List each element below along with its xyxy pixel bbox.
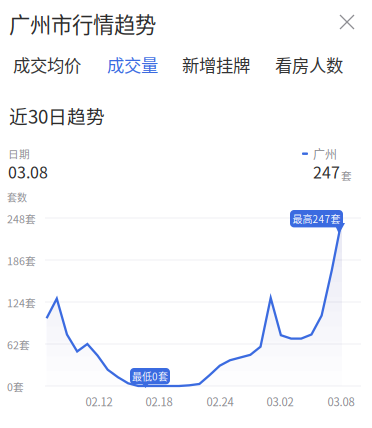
staticText: 广州 — [313, 145, 337, 162]
staticText: 新增挂牌 — [182, 52, 250, 77]
button[interactable]: 成交量 — [100, 46, 165, 83]
staticText: 最高247套 — [292, 211, 340, 226]
staticText: 套数 — [7, 190, 27, 204]
staticText: 成交均价 — [13, 52, 81, 77]
staticText: 03.08 — [327, 393, 354, 409]
button[interactable]: 关闭 — [330, 5, 364, 39]
staticText: 最低0套 — [132, 369, 168, 383]
staticText: 03.08 — [8, 160, 48, 183]
staticText: 248套 — [7, 211, 36, 226]
staticText: 日期 — [8, 146, 30, 161]
staticText: 02.18 — [145, 393, 172, 409]
staticText: 成交量 — [107, 52, 158, 77]
staticText: 看房人数 — [275, 52, 343, 77]
staticText: 124套 — [7, 295, 36, 310]
staticText: 02.24 — [206, 393, 233, 409]
staticText: 套 — [341, 168, 352, 183]
staticText: 广州市行情趋势 — [9, 8, 156, 39]
button[interactable]: 成交均价 — [6, 46, 88, 83]
staticText: 02.12 — [85, 393, 112, 409]
button[interactable]: 看房人数 — [268, 46, 350, 83]
staticText: 0套 — [7, 379, 24, 394]
staticText: 247 — [313, 160, 340, 183]
staticText: 03.02 — [266, 393, 293, 409]
staticText: 62套 — [7, 337, 30, 352]
button[interactable]: 新增挂牌 — [175, 46, 257, 83]
staticText: 186套 — [7, 253, 36, 268]
staticText: 近30日趋势 — [9, 102, 105, 129]
